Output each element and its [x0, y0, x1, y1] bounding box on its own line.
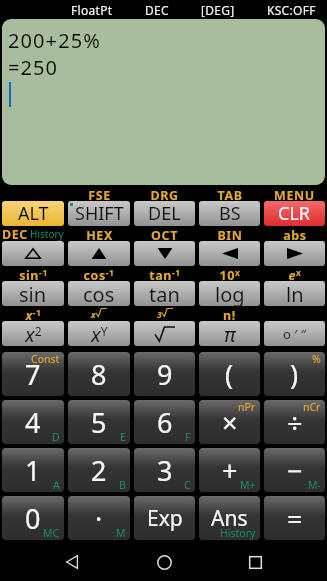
- button[interactable]: open parenthesis: [199, 352, 260, 396]
- staticText: MENU: [274, 187, 315, 201]
- staticText: =250: [8, 54, 59, 81]
- button[interactable]: sin: [2, 281, 64, 306]
- staticText: BIN: [217, 227, 243, 241]
- button[interactable]: tan: [134, 281, 195, 306]
- staticText: History: [30, 227, 64, 241]
- staticText: M-: [308, 478, 321, 492]
- button[interactable]: 5: [68, 400, 130, 444]
- button[interactable]: 3: [134, 448, 195, 492]
- staticText: xY: [91, 321, 108, 346]
- staticText: n!: [223, 307, 236, 321]
- button[interactable]: Home: [148, 546, 180, 578]
- button[interactable]: Right: [264, 241, 325, 266]
- staticText: Ans: [211, 504, 248, 533]
- button[interactable]: BS: [199, 201, 260, 226]
- staticText: %: [312, 352, 321, 366]
- staticText: nCr: [303, 400, 321, 414]
- staticText: DEC: [145, 2, 169, 18]
- staticText: F: [185, 430, 191, 444]
- button[interactable]: Back: [56, 546, 88, 578]
- button[interactable]: square root: [134, 321, 195, 346]
- staticText: B: [119, 478, 126, 492]
- button[interactable]: log: [199, 281, 260, 306]
- button[interactable]: DEL: [134, 201, 195, 226]
- button[interactable]: CLR: [264, 201, 325, 226]
- staticText: sin: [19, 281, 47, 306]
- button[interactable]: Recent apps: [239, 546, 271, 578]
- staticText: 1: [25, 452, 41, 489]
- button[interactable]: equals: [264, 496, 325, 540]
- staticText: D: [52, 430, 60, 444]
- button[interactable]: divide: [264, 400, 325, 444]
- staticText: 3: [157, 452, 173, 489]
- button[interactable]: 6: [134, 400, 195, 444]
- button[interactable]: ALT: [2, 201, 64, 226]
- staticText: E: [120, 430, 126, 444]
- staticText: HEX: [86, 227, 113, 241]
- staticText: KSC:OFF: [267, 2, 316, 18]
- staticText: M+: [240, 478, 256, 492]
- button[interactable]: 4: [2, 400, 64, 444]
- button[interactable]: plus: [199, 448, 260, 492]
- staticText: ×: [222, 404, 238, 441]
- button[interactable]: 7: [2, 352, 64, 396]
- staticText: C: [184, 478, 191, 492]
- button[interactable]: multiply: [199, 400, 260, 444]
- staticText: 200+25%: [8, 27, 101, 54]
- button[interactable]: ln: [264, 281, 325, 306]
- button[interactable]: Toggle base: [2, 241, 64, 266]
- staticText: 9: [157, 356, 173, 393]
- staticText: 0: [25, 500, 41, 537]
- staticText: OCT: [151, 227, 178, 241]
- button[interactable]: close parenthesis: [264, 352, 325, 396]
- button[interactable]: Left: [199, 241, 260, 266]
- staticText: =: [287, 500, 303, 537]
- button[interactable]: decimal point: [68, 496, 130, 540]
- button[interactable]: o ′ ″: [264, 321, 325, 346]
- staticText: Const: [31, 352, 60, 366]
- button[interactable]: x2: [2, 321, 64, 346]
- staticText: nPr: [238, 400, 256, 414]
- staticText: o ′ ″: [283, 325, 306, 343]
- staticText: ex: [288, 267, 302, 281]
- staticText: x: [91, 309, 96, 321]
- button[interactable]: cos: [68, 281, 130, 306]
- staticText: 8: [91, 356, 107, 393]
- button[interactable]: 2: [68, 448, 130, 492]
- button[interactable]: Up: [68, 241, 130, 266]
- staticText: x-1: [25, 307, 42, 321]
- staticText: abs: [283, 227, 307, 241]
- staticText: +: [222, 452, 238, 489]
- staticText: DEC: [2, 226, 28, 241]
- staticText: π: [224, 321, 236, 346]
- staticText: tan: [149, 281, 180, 306]
- button[interactable]: 1: [2, 448, 64, 492]
- button[interactable]: Exp: [134, 496, 195, 540]
- button[interactable]: 0: [2, 496, 64, 540]
- button[interactable]: xY: [68, 321, 130, 346]
- staticText: FSE: [88, 187, 111, 201]
- staticText: TAB: [217, 187, 243, 201]
- button[interactable]: 9: [134, 352, 195, 396]
- button[interactable]: Down: [134, 241, 195, 266]
- staticText: M: [116, 526, 126, 540]
- button[interactable]: SHIFT: [68, 201, 130, 226]
- button[interactable]: 8: [68, 352, 130, 396]
- staticText: ln: [286, 281, 304, 306]
- staticText: ): [290, 356, 299, 393]
- staticText: ALT: [18, 201, 49, 226]
- staticText: ·: [95, 500, 103, 537]
- staticText: tan-1: [149, 267, 181, 281]
- button[interactable]: π: [199, 321, 260, 346]
- staticText: SHIFT: [75, 201, 124, 226]
- staticText: (: [225, 356, 234, 393]
- staticText: 3: [157, 309, 162, 321]
- staticText: 2: [91, 452, 107, 489]
- staticText: −: [287, 452, 303, 489]
- staticText: FloatPt: [71, 2, 113, 18]
- staticText: DRG: [150, 187, 179, 201]
- button[interactable]: Ans: [199, 496, 260, 540]
- button[interactable]: minus: [264, 448, 325, 492]
- staticText: CLR: [278, 201, 311, 226]
- staticText: BS: [219, 201, 241, 226]
